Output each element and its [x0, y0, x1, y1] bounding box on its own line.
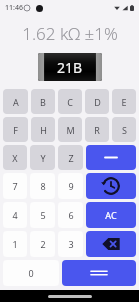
- staticText: R: [94, 124, 100, 136]
- button[interactable]: AC: [86, 202, 136, 228]
- button[interactable]: H: [31, 117, 55, 142]
- staticText: C: [67, 96, 73, 108]
- button[interactable]: S: [112, 117, 136, 142]
- staticText: H: [40, 124, 47, 136]
- button[interactable]: C: [58, 89, 82, 114]
- button[interactable]: 3: [58, 231, 83, 257]
- staticText: 21B: [57, 58, 83, 77]
- staticText: A: [13, 96, 19, 108]
- button[interactable]: History: [86, 173, 136, 199]
- button[interactable]: 6: [58, 202, 83, 228]
- staticText: 1: [12, 238, 18, 250]
- staticText: B: [40, 96, 46, 108]
- button[interactable]: B: [31, 89, 55, 114]
- staticText: S: [122, 124, 127, 136]
- staticText: 9: [68, 180, 74, 192]
- button[interactable]: E: [112, 89, 136, 114]
- button[interactable]: A: [3, 89, 28, 114]
- staticText: Z: [68, 152, 74, 164]
- button[interactable]: D: [85, 89, 109, 114]
- staticText: Y: [40, 152, 46, 164]
- staticText: 0: [28, 267, 34, 279]
- staticText: X: [12, 152, 18, 164]
- button[interactable]: Z: [58, 145, 83, 170]
- button[interactable]: 4: [3, 202, 27, 228]
- button[interactable]: 9: [58, 173, 83, 199]
- button[interactable]: X: [3, 145, 27, 170]
- staticText: F: [13, 124, 18, 136]
- button[interactable]: 0: [3, 260, 59, 286]
- button[interactable]: Y: [30, 145, 55, 170]
- staticText: 7: [12, 180, 18, 192]
- button[interactable]: Backspace: [86, 231, 136, 257]
- staticText: 2: [40, 238, 46, 250]
- staticText: 6: [68, 209, 74, 221]
- staticText: D: [94, 96, 101, 108]
- button[interactable]: R: [85, 117, 109, 142]
- staticText: 4: [12, 209, 18, 221]
- button[interactable]: Equals: [62, 260, 136, 286]
- staticText: M: [66, 124, 75, 136]
- staticText: 3: [68, 238, 74, 250]
- button[interactable]: Minus: [86, 145, 136, 170]
- staticText: 1.62 kΩ ±1%: [22, 22, 118, 45]
- staticText: 5: [40, 209, 46, 221]
- staticText: E: [121, 96, 127, 108]
- staticText: 11:46: [5, 3, 23, 13]
- button[interactable]: 5: [30, 202, 55, 228]
- button[interactable]: 8: [30, 173, 55, 199]
- button[interactable]: F: [3, 117, 28, 142]
- button[interactable]: 2: [30, 231, 55, 257]
- button[interactable]: 1: [3, 231, 27, 257]
- staticText: 8: [40, 180, 46, 192]
- button[interactable]: M: [58, 117, 82, 142]
- button[interactable]: 7: [3, 173, 27, 199]
- staticText: AC: [105, 209, 117, 221]
